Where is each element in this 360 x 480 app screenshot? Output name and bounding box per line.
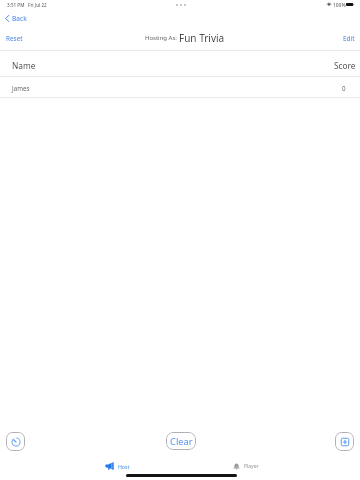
button[interactable]: Edit — [340, 31, 358, 46]
staticText: Name — [12, 60, 36, 71]
button[interactable]: James — [0, 77, 360, 97]
staticText: Host — [118, 463, 130, 470]
staticText: 100% — [333, 2, 346, 9]
button[interactable]: Add player — [335, 432, 354, 451]
staticText: 0 — [342, 84, 346, 92]
staticText: James — [12, 84, 30, 92]
button[interactable]: Timer — [6, 432, 25, 451]
staticText: Score — [334, 60, 356, 71]
button[interactable]: Back — [3, 12, 29, 25]
button[interactable]: Clear — [166, 432, 196, 450]
staticText: Fri Jul 22 — [28, 2, 47, 8]
staticText: Clear — [170, 435, 193, 448]
staticText: Back — [12, 14, 27, 23]
staticText: Player — [244, 463, 259, 470]
staticText: Edit — [343, 34, 355, 43]
staticText: 3:51 PM — [7, 2, 25, 8]
staticText: Fun Trivia — [179, 31, 225, 45]
staticText: Reset — [6, 34, 23, 43]
staticText: Hosting As: — [145, 34, 177, 42]
button[interactable]: Name — [0, 51, 360, 77]
button[interactable]: Reset — [3, 31, 26, 46]
button[interactable]: Player — [225, 457, 273, 471]
button[interactable]: Host — [97, 457, 143, 471]
